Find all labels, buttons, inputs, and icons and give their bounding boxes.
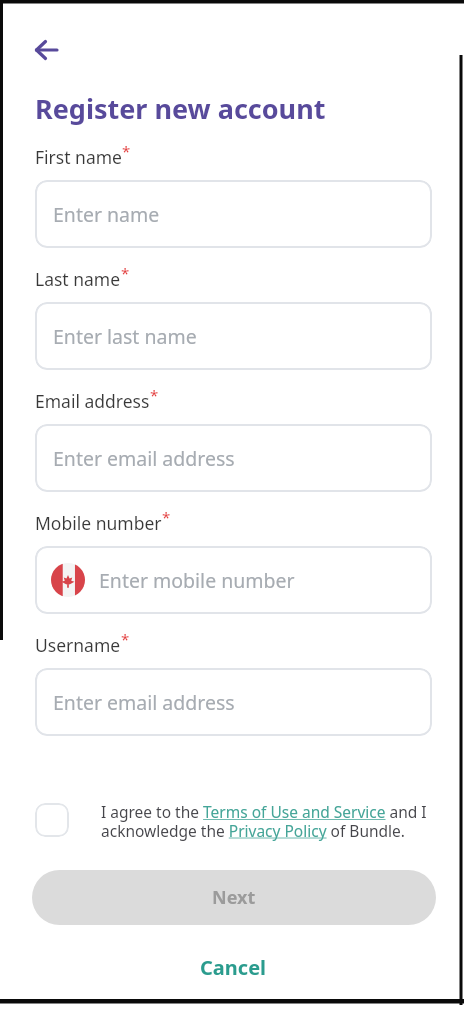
staticText: * xyxy=(121,263,130,283)
staticText: Enter email address xyxy=(53,445,235,472)
staticText: Enter email address xyxy=(53,689,235,716)
button[interactable]: Enter name xyxy=(35,180,432,248)
staticText: Enter name xyxy=(53,201,160,228)
staticText: Username xyxy=(35,633,121,657)
staticText: Email address xyxy=(35,389,150,413)
button[interactable]: I agree to the Terms of Use and Service … xyxy=(101,801,432,841)
staticText: * xyxy=(121,629,130,649)
staticText: * xyxy=(122,141,131,161)
button[interactable]: Enter last name xyxy=(35,302,432,370)
staticText: Enter mobile number xyxy=(99,567,295,594)
button[interactable]: Cancel xyxy=(200,954,267,981)
staticText: Next xyxy=(212,885,256,910)
staticText: * xyxy=(162,507,171,527)
button[interactable]: Next xyxy=(32,870,436,925)
staticText: Register new account xyxy=(35,90,326,127)
staticText: Mobile number xyxy=(35,511,162,535)
button[interactable] xyxy=(35,803,69,837)
button[interactable]: Enter mobile number xyxy=(35,546,432,614)
button[interactable]: Enter email address xyxy=(35,668,432,736)
staticText: * xyxy=(150,385,159,405)
staticText: First name xyxy=(35,145,122,169)
staticText: Last name xyxy=(35,267,121,291)
button[interactable]: Enter email address xyxy=(35,424,432,492)
staticText: Enter last name xyxy=(53,323,197,350)
button[interactable] xyxy=(35,40,59,60)
